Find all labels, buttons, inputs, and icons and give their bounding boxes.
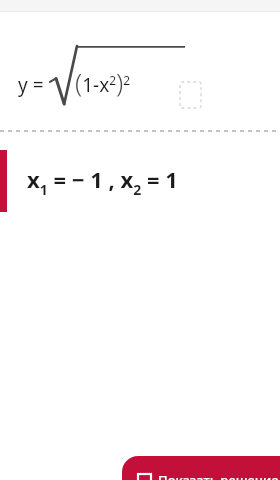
staticText: (1-x2)2 [75, 64, 131, 99]
button[interactable]: y = [0, 12, 280, 130]
staticText: x1 = − 1 , x2 = 1 [27, 164, 178, 199]
button[interactable]: Показать решение [122, 456, 280, 480]
button[interactable]: x1 = − 1 , x2 = 1 [0, 150, 280, 212]
staticText: y = [18, 72, 44, 98]
staticText: Показать решение [158, 471, 279, 480]
